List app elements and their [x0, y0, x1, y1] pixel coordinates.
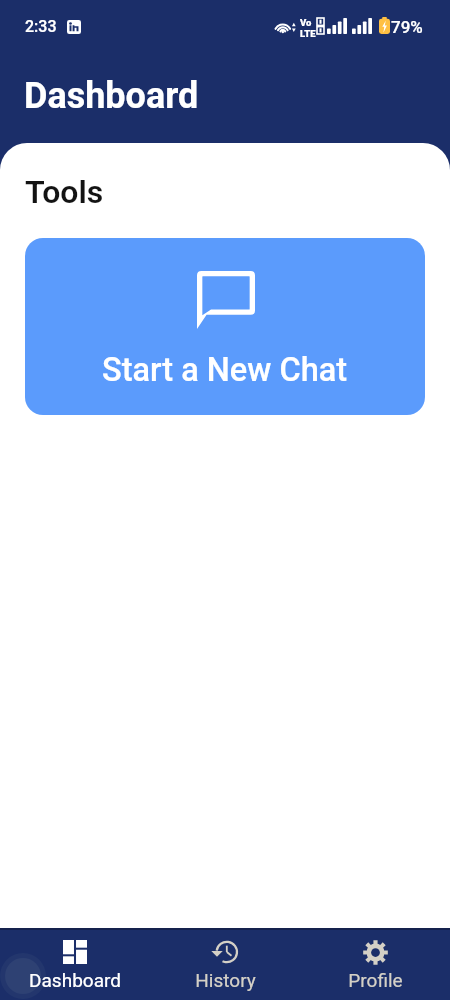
- button[interactable]: History: [150, 928, 300, 1000]
- staticText: 2:33: [25, 17, 57, 36]
- staticText: Dashboard: [29, 969, 121, 991]
- staticText: LTE: [300, 28, 316, 39]
- staticText: Dashboard: [24, 75, 199, 117]
- staticText: Vo: [300, 17, 312, 28]
- staticText: Tools: [25, 173, 104, 211]
- staticText: History: [195, 969, 256, 991]
- button[interactable]: Start a New Chat: [25, 238, 425, 415]
- staticText: 79%: [391, 17, 423, 37]
- staticText: Profile: [348, 969, 403, 991]
- button[interactable]: Profile: [300, 928, 450, 1000]
- button[interactable]: Dashboard: [0, 928, 150, 1000]
- staticText: Start a New Chat: [102, 351, 348, 389]
